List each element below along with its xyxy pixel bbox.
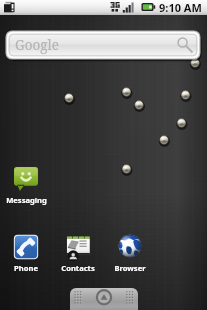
- other: Browser: [118, 235, 142, 259]
- staticText: Phone: [14, 263, 38, 273]
- other: Phone: [14, 235, 38, 259]
- staticText: Contacts: [61, 263, 95, 273]
- button[interactable]: Browser: [104, 234, 156, 274]
- button[interactable]: Messaging: [0, 166, 52, 206]
- button[interactable]: [6, 31, 200, 59]
- other: Contacts: [66, 235, 90, 259]
- button[interactable]: Open applications: [70, 288, 138, 310]
- button[interactable]: Contacts: [52, 234, 104, 274]
- staticText: Google: [15, 36, 59, 54]
- other: Messaging: [14, 167, 38, 191]
- button[interactable]: Phone: [0, 234, 52, 274]
- staticText: Messaging: [6, 195, 47, 205]
- staticText: 9:10 AM: [159, 0, 202, 15]
- staticText: Browser: [114, 263, 146, 273]
